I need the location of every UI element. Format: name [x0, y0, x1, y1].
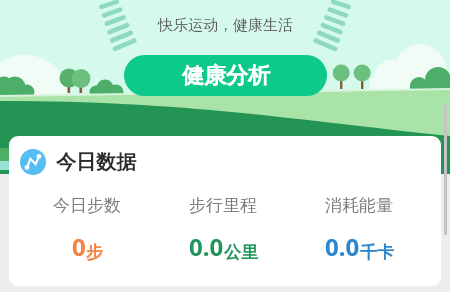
staticText: 健康分析: [182, 62, 270, 90]
staticText: 消耗能量: [325, 195, 393, 216]
staticText: 今日数据: [56, 150, 136, 175]
staticText: 快乐运动，健康生活: [158, 16, 293, 35]
staticText: 0.0: [189, 230, 224, 263]
button[interactable]: 今日数据: [9, 136, 441, 286]
staticText: 0: [72, 230, 86, 263]
button[interactable]: 今日步数: [19, 195, 155, 263]
button[interactable]: 健康分析: [124, 55, 327, 96]
staticText: 步行里程: [189, 195, 257, 216]
staticText: 千卡: [360, 242, 394, 263]
staticText: 公里: [224, 242, 258, 263]
staticText: 步: [86, 242, 103, 263]
button[interactable]: 消耗能量: [291, 195, 427, 263]
staticText: 今日步数: [53, 195, 121, 216]
button[interactable]: 步行里程: [155, 195, 291, 263]
staticText: 0.0: [325, 230, 360, 263]
